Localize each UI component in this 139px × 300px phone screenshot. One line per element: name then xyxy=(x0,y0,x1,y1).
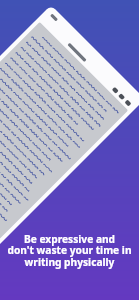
staticText: Be expressive and don't waste your time … xyxy=(0,232,139,269)
